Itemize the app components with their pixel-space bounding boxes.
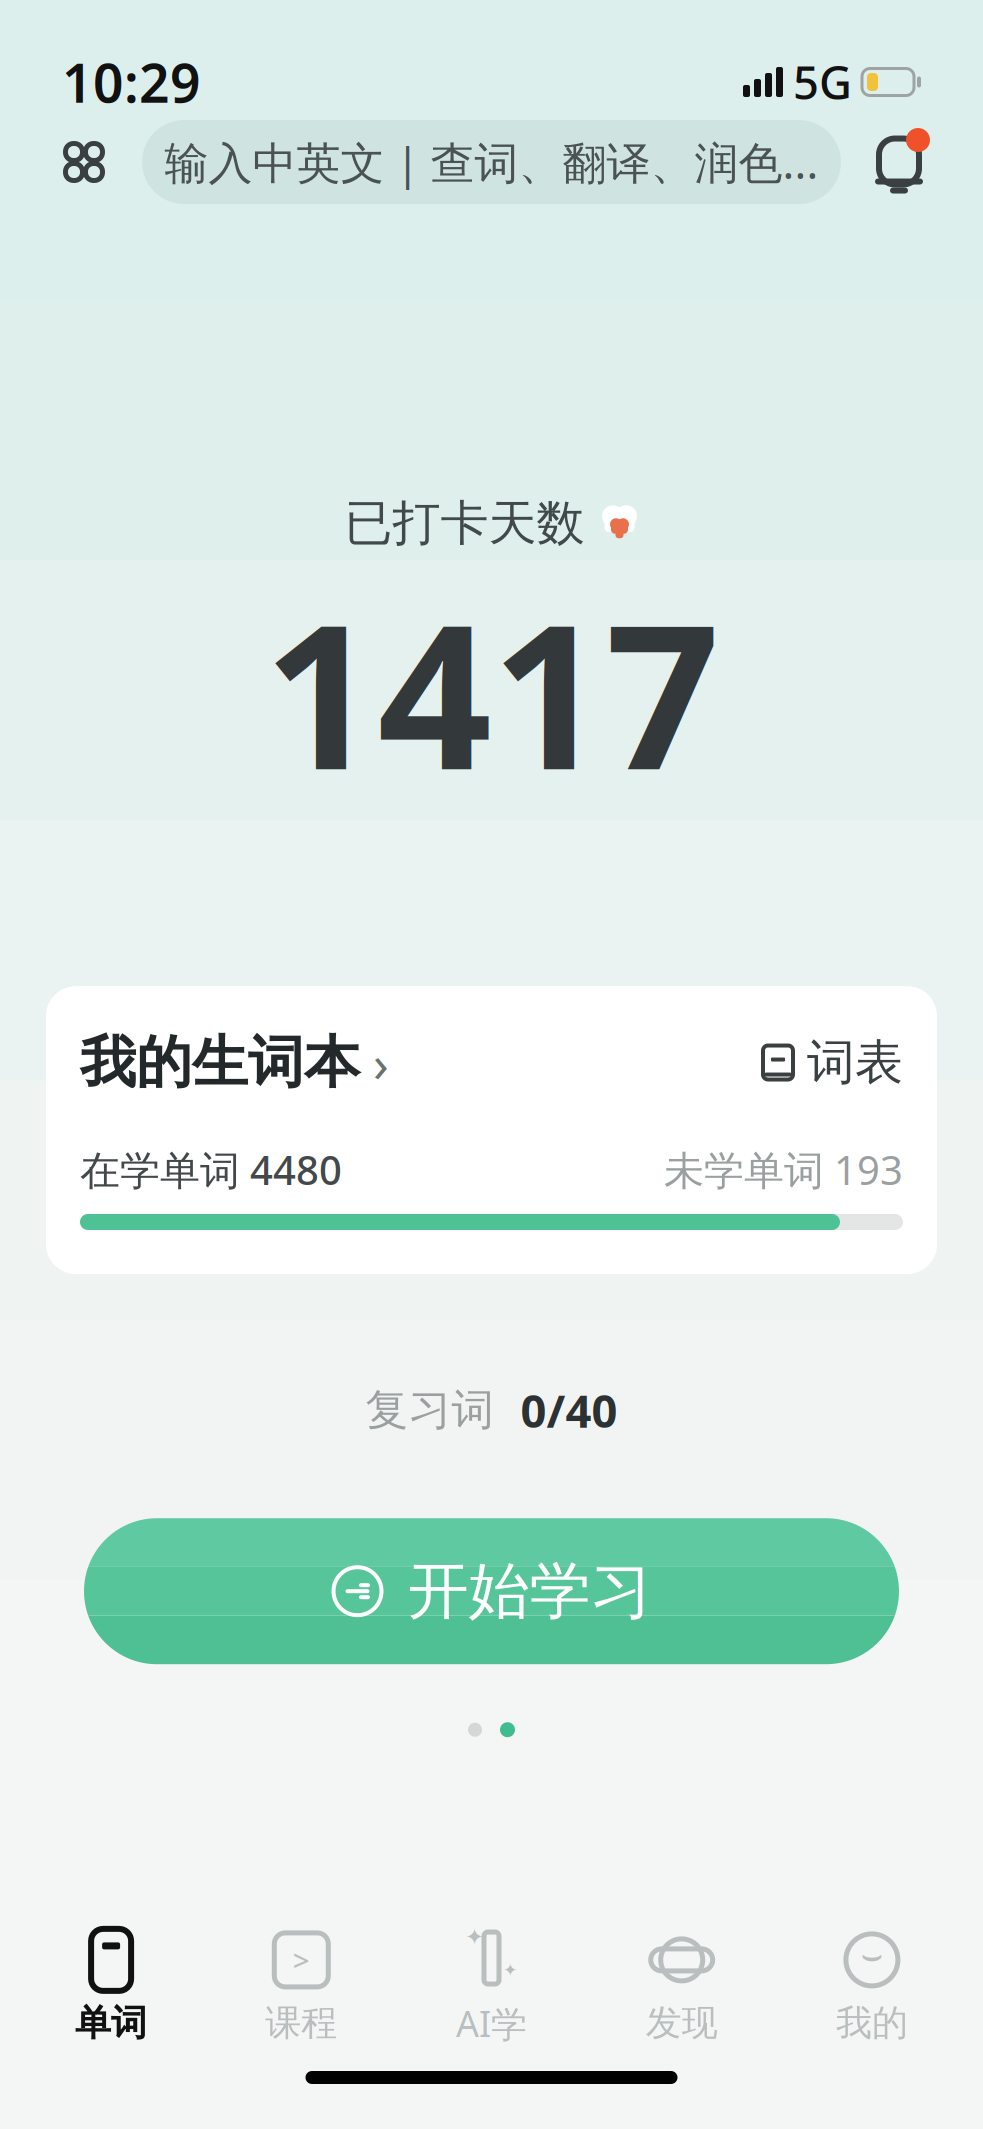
staticText: 我的生词本 (80, 1028, 360, 1097)
button[interactable]: 发现 (587, 1921, 777, 2051)
button[interactable]: 开始学习 (84, 1518, 899, 1664)
staticText: 输入中英文 | 查词、翻译、润色... (164, 133, 818, 191)
button[interactable]: ⌣ (777, 1921, 967, 2051)
staticText: ⌣ (860, 1939, 883, 1973)
button[interactable]: ✦ (396, 1919, 587, 2053)
staticText: 在学单词 4480 (80, 1143, 342, 1196)
staticText: 我的 (836, 2001, 908, 2045)
button[interactable]: 通知 (851, 114, 947, 210)
staticText: 开始学习 (407, 1553, 651, 1629)
staticText: 发现 (646, 2001, 718, 2045)
button[interactable]: > (206, 1921, 396, 2051)
staticText: ✦ (465, 1924, 484, 1950)
button[interactable]: 我的生词本 (46, 986, 937, 1274)
staticText: > (293, 1940, 310, 1979)
staticText: 已打卡天数 (344, 494, 584, 553)
staticText: AI学 (456, 1999, 527, 2047)
button[interactable]: 单词 (16, 1921, 206, 2051)
button[interactable]: 功能面板 (36, 114, 132, 210)
staticText: 0/40 (520, 1380, 617, 1440)
staticText: 未学单词 193 (664, 1143, 903, 1196)
staticText: 课程 (265, 2001, 337, 2045)
staticText: 1417 (263, 559, 719, 824)
button[interactable]: 输入中英文 | 查词、翻译、润色... (142, 120, 841, 204)
staticText: 复习词 (365, 1384, 494, 1436)
staticText: ✦ (503, 1960, 518, 1980)
staticText: 5G (793, 52, 852, 112)
staticText: 词表 (807, 1033, 903, 1092)
staticText: 单词 (75, 2001, 147, 2045)
staticText: 10:29 (62, 47, 201, 117)
staticText: › (360, 1029, 389, 1096)
